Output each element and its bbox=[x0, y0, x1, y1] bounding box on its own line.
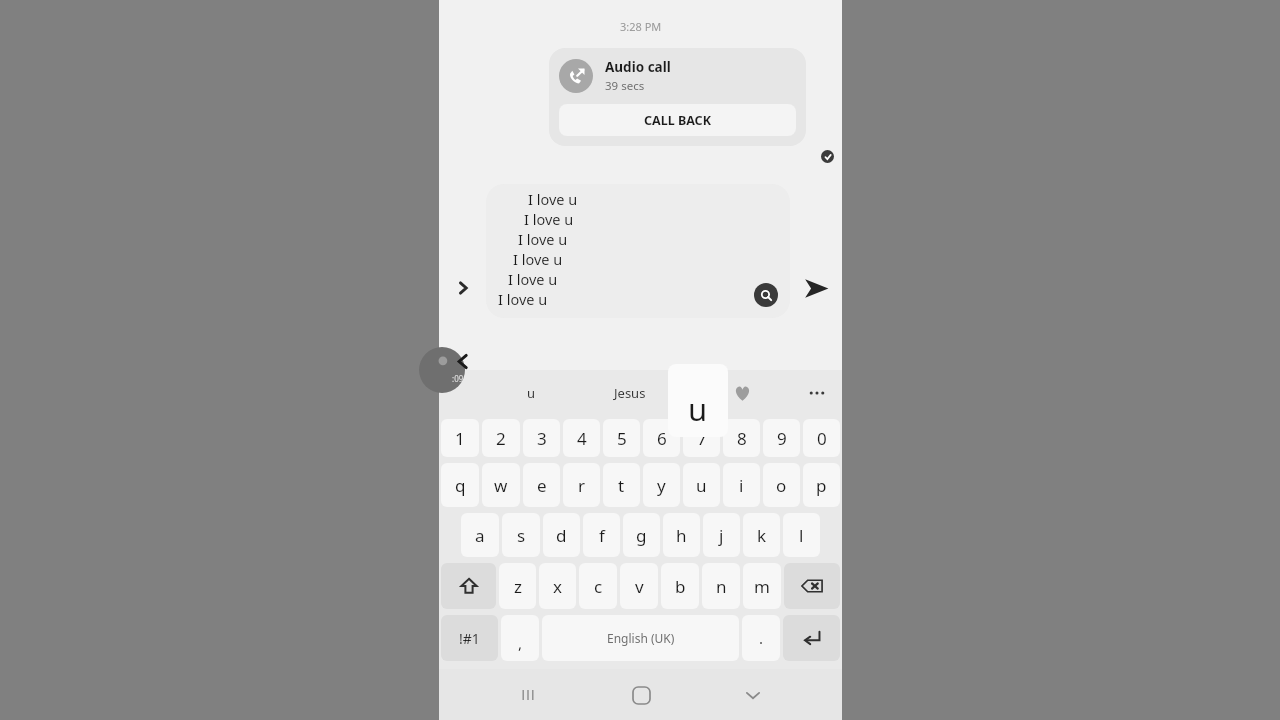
button[interactable]: k bbox=[743, 513, 780, 557]
button[interactable]: 1 bbox=[441, 419, 479, 457]
button[interactable]: g bbox=[623, 513, 660, 557]
button[interactable]: y bbox=[643, 463, 680, 507]
button[interactable]: Hide keyboard bbox=[729, 671, 777, 719]
staticText: I love u bbox=[498, 289, 548, 309]
staticText: m bbox=[754, 575, 770, 598]
button[interactable]: Expand bbox=[439, 258, 486, 318]
button[interactable]: Recents bbox=[504, 671, 552, 719]
staticText: I love u bbox=[513, 249, 563, 269]
button[interactable]: a bbox=[461, 513, 499, 557]
staticText: u bbox=[696, 474, 707, 497]
button[interactable]: b bbox=[661, 563, 699, 609]
staticText: 1 bbox=[455, 427, 465, 450]
button[interactable]: q bbox=[441, 463, 479, 507]
button[interactable]: j bbox=[703, 513, 740, 557]
staticText: z bbox=[514, 575, 522, 598]
staticText: e bbox=[537, 474, 547, 497]
button[interactable]: i bbox=[723, 463, 760, 507]
button[interactable]: h bbox=[663, 513, 700, 557]
staticText: b bbox=[675, 575, 686, 598]
staticText: !#1 bbox=[459, 629, 480, 648]
staticText: w bbox=[494, 474, 508, 497]
button[interactable]: 6 bbox=[643, 419, 680, 457]
button[interactable]: o bbox=[763, 463, 800, 507]
button[interactable]: r bbox=[563, 463, 600, 507]
button[interactable]: 7 bbox=[683, 419, 720, 457]
button[interactable]: 5 bbox=[603, 419, 640, 457]
staticText: k bbox=[757, 524, 767, 547]
button[interactable]: f bbox=[583, 513, 620, 557]
staticText: 0 bbox=[817, 427, 827, 450]
button[interactable]: I love u bbox=[486, 184, 790, 318]
button[interactable]: Call timer bbox=[419, 347, 465, 393]
staticText: o bbox=[776, 474, 787, 497]
staticText: f bbox=[599, 524, 605, 547]
staticText: 7 bbox=[697, 427, 707, 450]
button[interactable]: 8 bbox=[723, 419, 760, 457]
button[interactable]: Home bbox=[617, 671, 665, 719]
button[interactable]: Back bbox=[449, 348, 475, 374]
button[interactable]: u bbox=[527, 384, 536, 402]
staticText: y bbox=[657, 474, 666, 497]
staticText: 39 secs bbox=[605, 78, 645, 94]
staticText: n bbox=[716, 575, 727, 598]
staticText: 3:28 PM bbox=[620, 19, 662, 34]
staticText: 2 bbox=[496, 427, 506, 450]
staticText: d bbox=[556, 524, 567, 547]
button[interactable]: !#1 bbox=[441, 615, 498, 661]
button[interactable]: Heart emoji bbox=[731, 382, 753, 404]
staticText: 3 bbox=[537, 427, 547, 450]
button[interactable]: Enter bbox=[783, 615, 840, 661]
button[interactable]: 3 bbox=[523, 419, 560, 457]
staticText: 6 bbox=[657, 427, 667, 450]
staticText: v bbox=[635, 575, 644, 598]
button[interactable]: u bbox=[683, 463, 720, 507]
button[interactable]: . bbox=[742, 615, 780, 661]
button[interactable]: c bbox=[579, 563, 617, 609]
button[interactable]: z bbox=[499, 563, 536, 609]
button[interactable]: e bbox=[523, 463, 560, 507]
staticText: :09 bbox=[452, 373, 464, 384]
button[interactable]: Shift bbox=[441, 563, 496, 609]
staticText: a bbox=[475, 524, 485, 547]
button[interactable]: Audio call bbox=[549, 48, 806, 146]
staticText: 9 bbox=[777, 427, 787, 450]
button[interactable]: d bbox=[543, 513, 580, 557]
button[interactable]: p bbox=[803, 463, 840, 507]
staticText: q bbox=[455, 474, 466, 497]
staticText: u bbox=[688, 388, 708, 430]
button[interactable]: 0 bbox=[803, 419, 840, 457]
button[interactable]: w bbox=[482, 463, 520, 507]
button[interactable]: Search bbox=[754, 283, 778, 307]
button[interactable]: , bbox=[501, 615, 539, 661]
button[interactable]: s bbox=[502, 513, 540, 557]
button[interactable]: t bbox=[603, 463, 640, 507]
staticText: 5 bbox=[617, 427, 627, 450]
button[interactable]: m bbox=[743, 563, 781, 609]
staticText: . bbox=[759, 628, 764, 648]
staticText: p bbox=[816, 474, 827, 497]
button[interactable]: l bbox=[783, 513, 820, 557]
staticText: I love u bbox=[518, 229, 568, 249]
button[interactable]: n bbox=[702, 563, 740, 609]
staticText: I love u bbox=[508, 269, 558, 289]
staticText: s bbox=[517, 524, 526, 547]
button[interactable]: Jesus bbox=[614, 384, 646, 402]
staticText: r bbox=[578, 474, 586, 497]
staticText: , bbox=[518, 633, 523, 653]
button[interactable]: 4 bbox=[563, 419, 600, 457]
button[interactable]: 9 bbox=[763, 419, 800, 457]
button[interactable]: English (UK) bbox=[542, 615, 739, 661]
staticText: 4 bbox=[577, 427, 587, 450]
staticText: l bbox=[799, 524, 804, 547]
button[interactable]: More options bbox=[804, 380, 830, 406]
staticText: I love u bbox=[528, 189, 578, 209]
button[interactable]: v bbox=[620, 563, 658, 609]
staticText: English (UK) bbox=[607, 630, 675, 646]
staticText: 8 bbox=[737, 427, 747, 450]
button[interactable]: Backspace bbox=[784, 563, 840, 609]
button[interactable]: x bbox=[539, 563, 576, 609]
button[interactable]: Send bbox=[790, 258, 842, 318]
button[interactable]: 2 bbox=[482, 419, 520, 457]
button[interactable]: CALL BACK bbox=[559, 104, 796, 136]
